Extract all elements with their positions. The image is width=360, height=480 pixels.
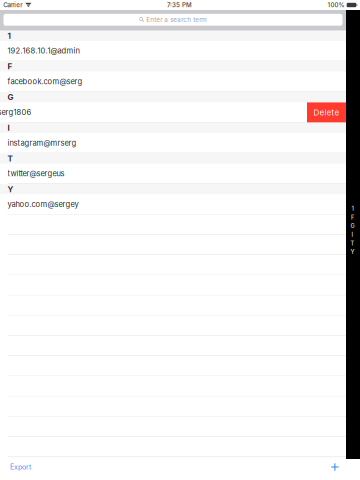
button[interactable]: Section index [349,205,356,255]
button[interactable]: Add [324,458,346,476]
button[interactable]: yahoo.com@sergey [0,194,346,215]
staticText: G [350,223,354,229]
button[interactable]: Enter a search term [3,14,342,26]
staticText: I [351,231,353,238]
staticText: Enter a search term [146,16,206,24]
button[interactable]: 192.168.10.1@admin [0,41,346,61]
staticText: I [7,123,9,133]
staticText: 100% [327,1,344,9]
staticText: facebook.com@serg [7,77,82,86]
staticText: instagram@mrserg [7,138,76,147]
staticText: G [7,92,13,102]
staticText: F [351,214,354,221]
button[interactable]: instagram@mrserg [0,133,346,153]
staticText: 1 [7,31,10,41]
staticText: 7:35 PM [167,1,192,9]
staticText: twitter@sergeus [7,169,64,178]
button[interactable]: twitter@sergeus [0,164,346,184]
staticText: F [7,62,12,71]
staticText: Export [10,463,31,471]
staticText: serg1806 [0,108,32,117]
staticText: Y [7,184,13,194]
staticText: 1 [351,205,353,212]
staticText: Carrier [3,1,22,9]
button[interactable]: Delete [307,102,346,123]
staticText: T [350,240,354,247]
button[interactable]: Export [0,457,41,477]
staticText: 192.168.10.1@admin [7,46,79,55]
staticText: T [7,154,12,163]
staticText: Delete [313,108,339,117]
button[interactable]: facebook.com@serg [0,72,346,92]
staticText: Y [350,249,354,255]
staticText: yahoo.com@sergey [7,200,78,209]
